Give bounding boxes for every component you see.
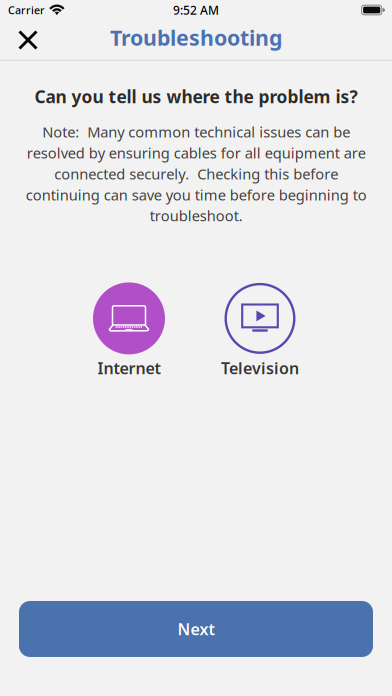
staticText: 9:52 AM (173, 2, 219, 18)
button[interactable]: Internet (93, 282, 165, 379)
staticText: Internet (97, 357, 160, 379)
button[interactable]: Next (19, 601, 373, 657)
staticText: Note: Many common technical issues can b… (25, 122, 366, 225)
staticText: Can you tell us where the problem is? (34, 85, 357, 108)
staticText: Carrier (8, 3, 45, 17)
staticText: Television (221, 357, 299, 379)
button[interactable]: Television (221, 282, 299, 379)
staticText: Troubleshooting (110, 23, 282, 52)
button[interactable]: Close (5, 20, 51, 59)
staticText: Next (177, 618, 214, 640)
